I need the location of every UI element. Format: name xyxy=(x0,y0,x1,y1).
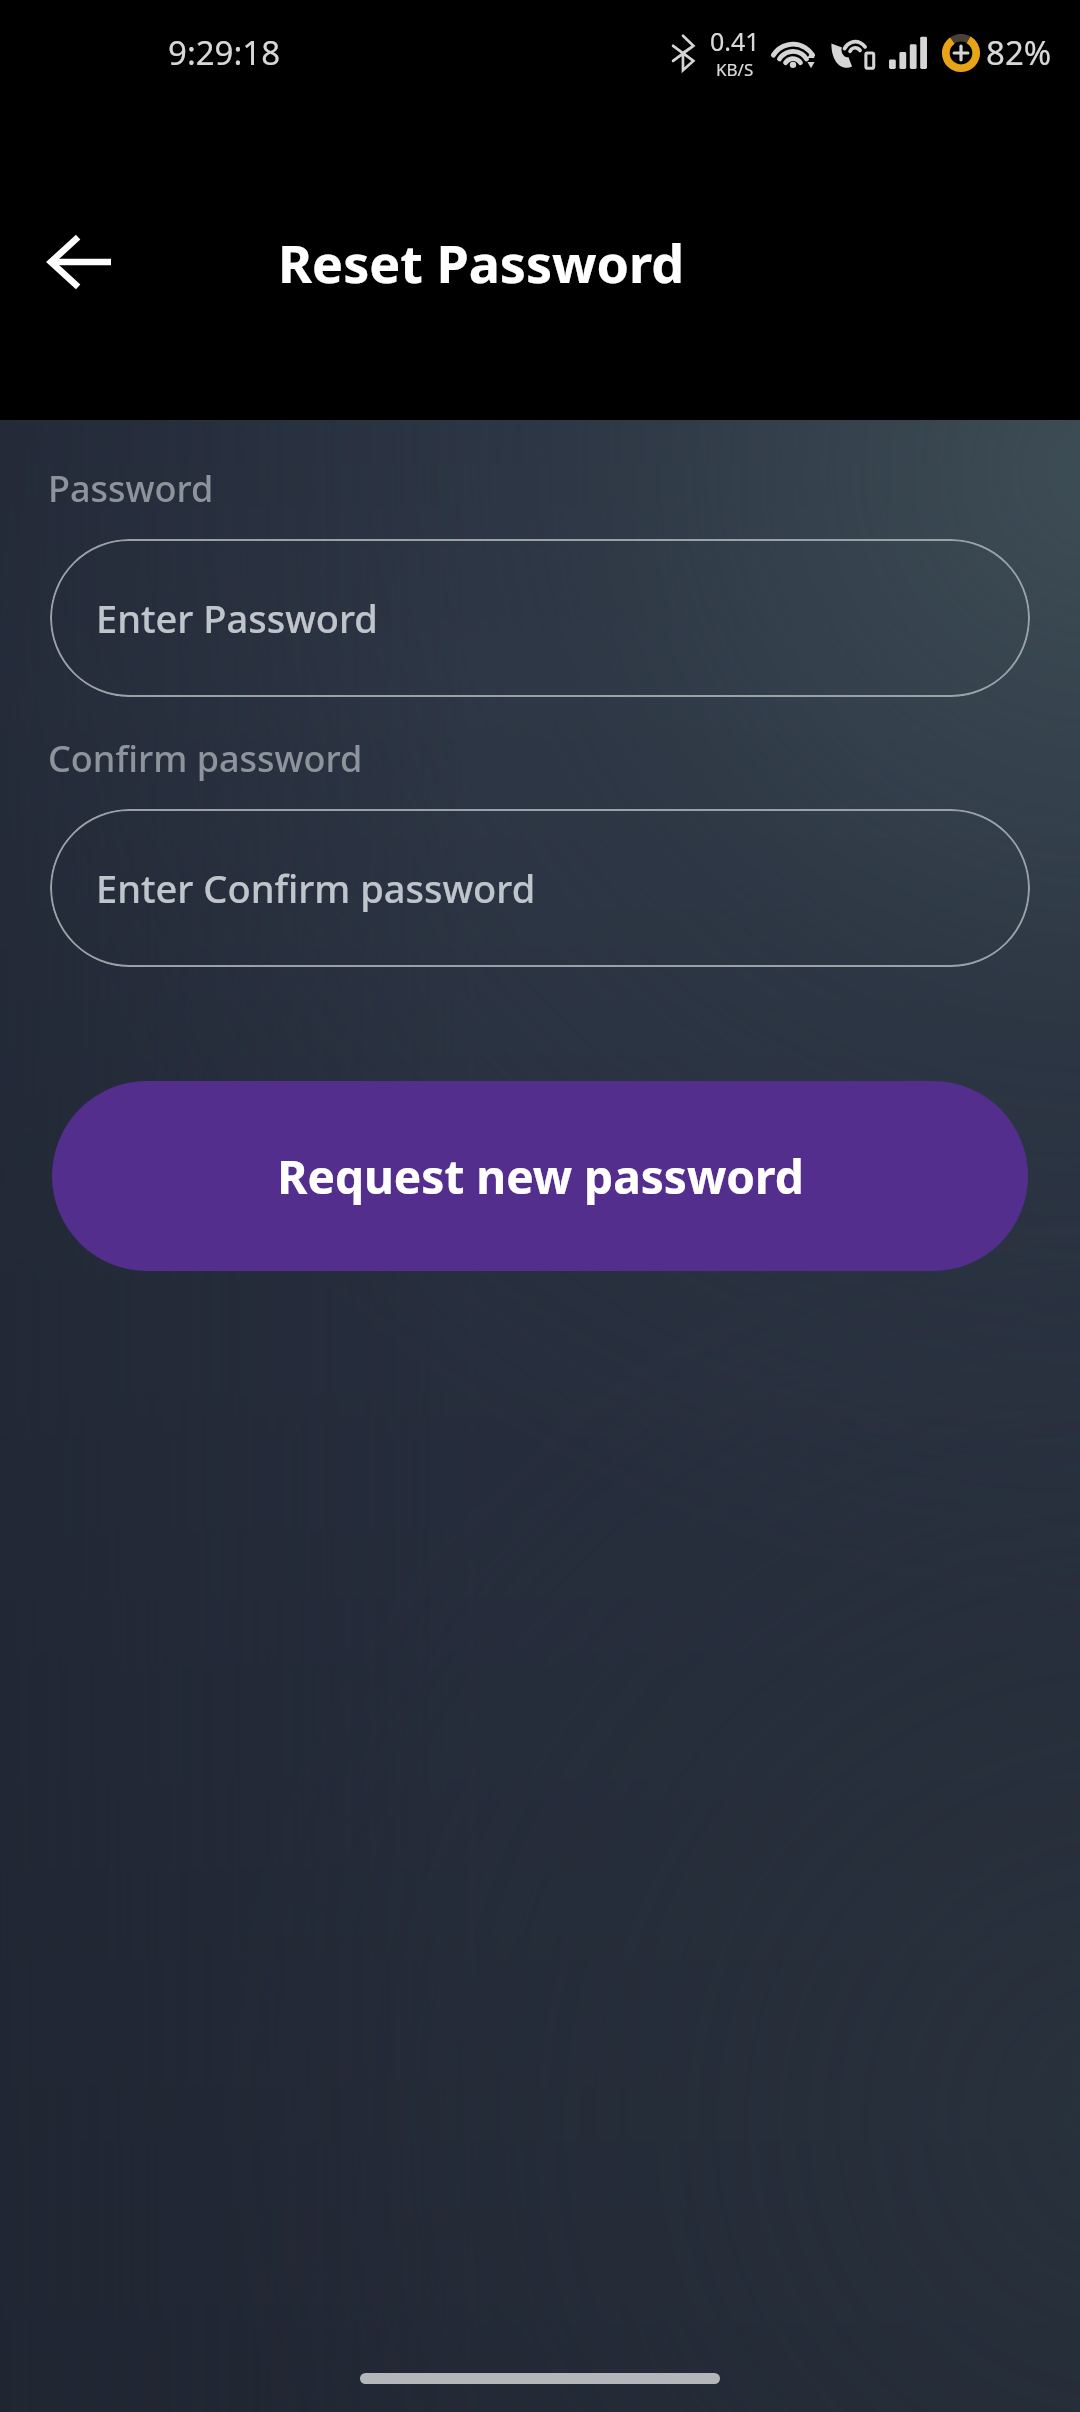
staticText: Reset Password xyxy=(278,227,685,298)
staticText: Enter Confirm password xyxy=(96,862,536,914)
button[interactable]: Request new password xyxy=(52,1081,1028,1271)
button[interactable]: Enter Confirm password xyxy=(50,809,1030,967)
button[interactable]: Back xyxy=(28,210,132,314)
staticText: 9:29:18 xyxy=(168,30,281,75)
staticText: KB/S xyxy=(716,58,754,81)
staticText: Confirm password xyxy=(48,734,363,783)
staticText: 82% xyxy=(986,30,1052,75)
staticText: Request new password xyxy=(277,1145,804,1208)
button[interactable]: Enter Password xyxy=(50,539,1030,697)
staticText: Enter Password xyxy=(96,592,378,644)
staticText: 0.41 xyxy=(710,24,760,58)
staticText: Password xyxy=(48,464,214,513)
